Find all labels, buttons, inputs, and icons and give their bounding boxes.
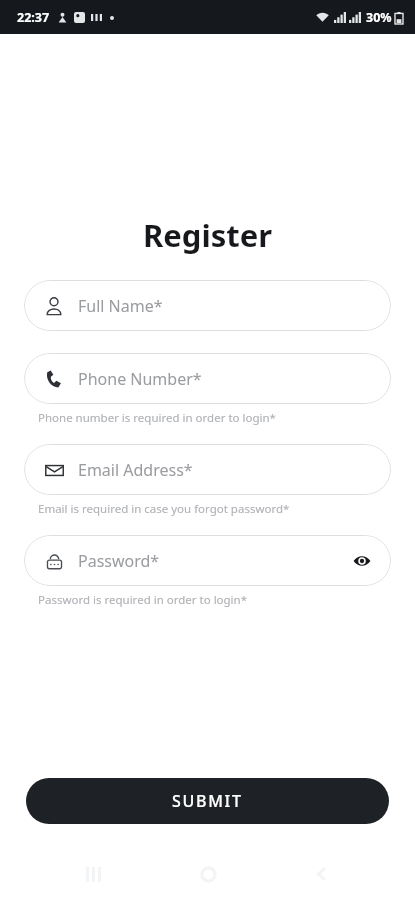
button[interactable]: Show password <box>350 549 374 573</box>
staticText: Phone Number* <box>78 368 374 390</box>
button[interactable]: Recents <box>71 856 115 892</box>
staticText: Full Name* <box>78 295 374 317</box>
staticText: Email Address* <box>78 459 374 481</box>
staticText: Password* <box>78 550 350 572</box>
staticText: Register <box>0 214 415 256</box>
staticText: Phone number is required in order to log… <box>38 410 415 426</box>
staticText: SUBMIT <box>172 790 243 812</box>
staticText: Email is required in case you forgot pas… <box>38 501 415 517</box>
button[interactable]: Password* <box>24 535 391 586</box>
staticText: 22:37 <box>17 9 50 26</box>
staticText: 30% <box>366 9 392 26</box>
button[interactable]: Full Name* <box>24 280 391 331</box>
staticText: Password is required in order to login* <box>38 592 415 608</box>
button[interactable]: SUBMIT <box>26 778 389 824</box>
button[interactable]: Email Address* <box>24 444 391 495</box>
button[interactable]: Home <box>186 856 230 892</box>
button[interactable]: Phone Number* <box>24 353 391 404</box>
